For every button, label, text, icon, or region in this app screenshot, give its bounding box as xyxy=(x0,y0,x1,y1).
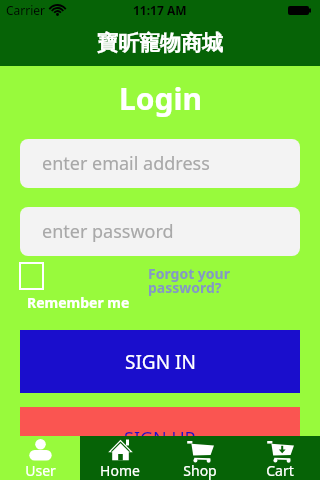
staticText: Shop xyxy=(183,461,217,480)
staticText: SIGN IN xyxy=(125,349,196,375)
staticText: Cart xyxy=(266,461,294,480)
button[interactable] xyxy=(19,262,44,290)
staticText: Login xyxy=(119,78,202,119)
button[interactable]: Cart xyxy=(240,436,320,480)
button[interactable]: Forgot your password? xyxy=(148,264,230,297)
staticText: SIGN UP xyxy=(124,426,196,451)
button[interactable]: enter email address xyxy=(20,139,300,188)
staticText: 寶昕寵物商城 xyxy=(97,30,223,56)
button[interactable]: User xyxy=(0,436,80,480)
staticText: Home xyxy=(100,461,140,480)
staticText: 11:17 AM xyxy=(133,2,187,18)
button[interactable]: enter password xyxy=(20,207,300,256)
staticText: Remember me xyxy=(27,293,130,312)
button[interactable]: Home xyxy=(80,436,160,480)
button[interactable]: Shop xyxy=(160,436,240,480)
staticText: enter email address xyxy=(42,151,210,176)
button[interactable]: SIGN IN xyxy=(20,330,300,393)
staticText: Carrier xyxy=(6,2,46,18)
button[interactable]: SIGN UP xyxy=(20,407,300,470)
staticText: enter password xyxy=(42,219,174,244)
staticText: User xyxy=(25,461,56,480)
